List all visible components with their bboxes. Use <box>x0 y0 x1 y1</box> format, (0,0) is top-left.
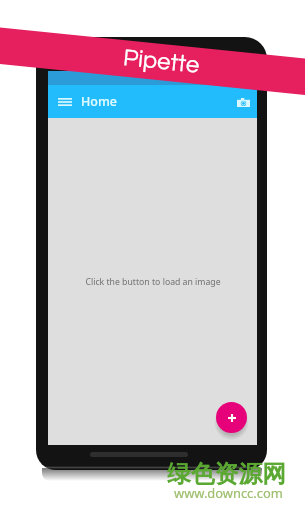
button[interactable]: Open navigation drawer <box>53 88 77 116</box>
button[interactable]: Add image <box>216 402 247 433</box>
staticText: Click the button to load an image <box>85 276 221 288</box>
staticText: 绿色资源网 <box>167 459 286 489</box>
staticText: Pipette <box>122 45 201 78</box>
staticText: www.downcc.com <box>174 484 283 502</box>
staticText: Home <box>81 93 118 110</box>
button[interactable]: Take photo <box>231 88 255 116</box>
